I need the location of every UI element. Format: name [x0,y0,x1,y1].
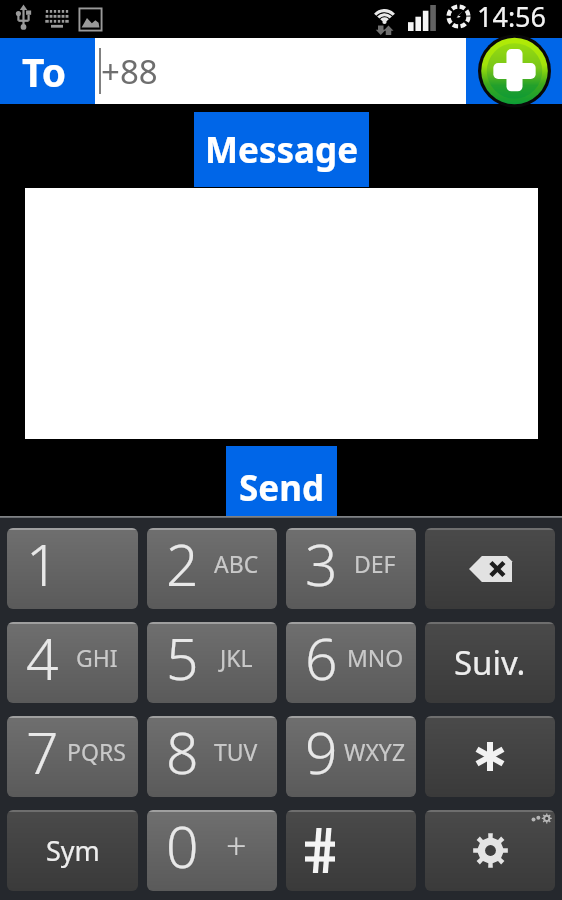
staticText: WXYZ [344,736,406,767]
staticText: Message [205,126,359,174]
button[interactable]: 5 [147,622,277,703]
staticText: ABC [214,548,259,579]
staticText: +88 [101,49,158,94]
staticText: Send [239,464,325,512]
staticText: 14:56 [477,0,547,35]
button[interactable]: Message [194,112,369,187]
button[interactable]: Star [425,716,555,797]
staticText: 5 [166,622,199,697]
staticText: 1 [26,528,59,603]
button[interactable]: Add contact [466,38,562,104]
button[interactable]: 7 [7,716,138,797]
staticText: MNO [347,642,404,673]
staticText: 3 [305,528,338,603]
button[interactable]: 4 [7,622,138,703]
button[interactable]: Send [226,446,337,516]
staticText: + [226,821,247,870]
button[interactable]: 2 [147,528,277,609]
button[interactable]: 0 [147,810,277,891]
staticText: To [22,45,67,98]
button[interactable]: 3 [286,528,416,609]
button[interactable]: 6 [286,622,416,703]
staticText: Suiv. [454,640,526,685]
staticText: 7 [26,716,59,791]
staticText: DEF [354,548,396,579]
staticText: JKL [220,642,253,673]
button[interactable]: 8 [147,716,277,797]
staticText: Sym [46,832,100,869]
button[interactable]: Hash [286,810,416,891]
button[interactable]: 9 [286,716,416,797]
staticText: 0 [166,810,199,885]
staticText: TUV [214,736,258,767]
staticText: PQRS [67,736,126,767]
staticText: GHI [76,642,118,673]
button[interactable]: Suiv. [425,622,555,703]
staticText: 4 [26,622,59,697]
button[interactable]: +88 [95,38,466,104]
staticText: 9 [305,716,338,791]
button[interactable]: Keyboard settings [425,810,555,891]
staticText: 8 [166,716,199,791]
button[interactable]: To [0,38,95,104]
button[interactable]: Backspace [425,528,555,609]
button[interactable]: 1 [7,528,138,609]
staticText: 2 [166,528,199,603]
button[interactable]: Sym [7,810,138,891]
staticText: 6 [305,622,338,697]
